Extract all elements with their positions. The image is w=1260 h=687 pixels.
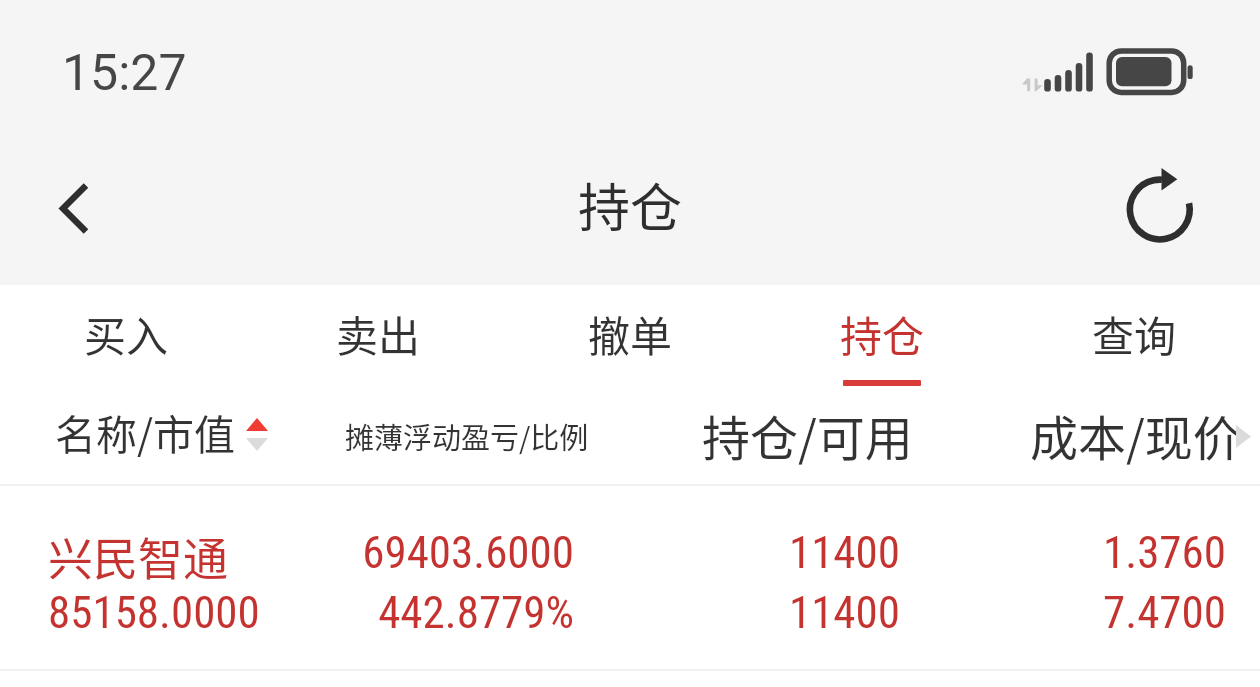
button[interactable]: 持仓/可用 [702,400,913,470]
button[interactable]: 撤单 [504,285,756,385]
staticText: 持仓 [840,303,925,364]
button[interactable]: 成本/现价 [1030,400,1241,470]
staticText: 11400 [580,586,900,639]
staticText: 名称/市值 [55,402,236,461]
button[interactable]: Refresh [1110,160,1210,260]
staticText: 查询 [1092,303,1177,364]
staticText: 7.4700 [906,586,1226,639]
staticText: 85158.0000 [48,586,260,639]
staticText: 69403.6000 [254,526,574,579]
button[interactable]: 持仓 [756,285,1008,385]
staticText: 1.3760 [906,526,1226,579]
button[interactable]: 查询 [1008,285,1260,385]
staticText: 卖出 [336,303,421,364]
staticText: 442.8779% [254,586,574,639]
staticText: 撤单 [588,303,673,364]
button[interactable]: 兴民智通 [0,486,1260,668]
button[interactable]: 摊薄浮动盈亏/比例 [345,415,589,457]
button[interactable]: 卖出 [252,285,504,385]
staticText: 兴民智通 [48,524,229,589]
staticText: 11400 [580,526,900,579]
staticText: 买入 [84,303,169,364]
button[interactable]: 名称/市值 [35,390,280,475]
button[interactable]: 买入 [0,285,252,385]
button[interactable]: Back [10,164,110,264]
staticText: 15:27 [62,44,187,103]
staticText: 持仓 [578,167,683,242]
